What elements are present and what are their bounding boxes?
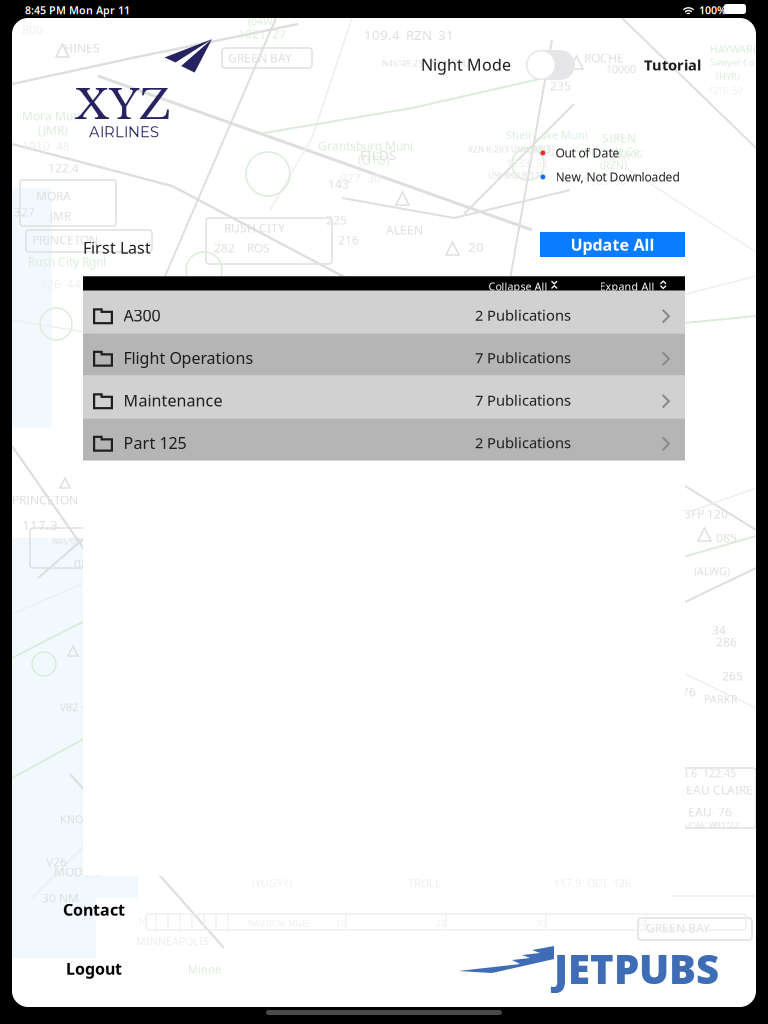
staticText: 117.9 ODI 126 — [554, 876, 631, 890]
staticText: 800 — [22, 22, 43, 38]
staticText: GREEN BAY — [646, 920, 710, 936]
staticText: 20 — [468, 238, 484, 256]
staticText: 34 — [712, 622, 726, 638]
staticText: HAYWARD — [710, 42, 761, 56]
staticText: Grantsburg Muni — [318, 138, 413, 154]
staticText: XYZ — [75, 79, 171, 130]
staticText: (GTG) — [358, 152, 390, 168]
button[interactable]: Contact — [63, 899, 125, 920]
staticText: Logout — [66, 958, 122, 979]
staticText: Minne — [188, 962, 221, 976]
staticText: N53°46' W91°22' — [676, 820, 741, 831]
staticText: 30 — [536, 918, 546, 929]
staticText: (SSQ) — [528, 142, 554, 156]
button[interactable]: Night Mode toggle — [526, 50, 575, 80]
staticText: MORA — [36, 188, 71, 204]
staticText: 10000 — [606, 62, 636, 76]
staticText: 085 — [74, 556, 95, 572]
staticText: JMR — [50, 208, 71, 224]
staticText: 7 Publications — [475, 348, 571, 367]
staticText: 927 30 — [340, 170, 381, 186]
staticText: A300 — [123, 305, 160, 326]
button[interactable]: Logout — [66, 958, 122, 979]
staticText: 235 — [550, 78, 571, 94]
staticText: 30 NM — [42, 890, 79, 906]
staticText: 76 — [682, 684, 696, 700]
staticText: MINNEAPOLIS — [136, 934, 209, 948]
staticText: Out of Date — [555, 145, 619, 161]
staticText: 2 Publications — [475, 433, 571, 452]
staticText: 7 Publications — [475, 390, 571, 410]
staticText: Maintenance — [123, 390, 222, 411]
staticText: Tutorial — [644, 55, 701, 74]
staticText: Rush City Rgnl — [28, 254, 106, 270]
staticText: 282 ROS — [214, 240, 270, 256]
button[interactable]: Tutorial — [644, 55, 701, 74]
staticText: KNO — [60, 812, 83, 826]
staticText: 20 — [436, 918, 446, 929]
staticText: GREEN BAY — [228, 50, 292, 66]
staticText: PRINCETON — [32, 232, 98, 248]
staticText: 10 — [336, 918, 346, 929]
staticText: (HYR) — [716, 70, 740, 82]
staticText: 40 — [636, 918, 646, 929]
staticText: Shell Lake Muni — [506, 128, 588, 142]
button[interactable]: Part 125 — [83, 418, 685, 461]
staticText: N45°49.23' W92°22.47' — [382, 58, 473, 69]
staticText: EAU CLAIRE — [686, 782, 753, 798]
staticText: 327 — [14, 204, 35, 220]
staticText: PARKR — [704, 692, 738, 706]
staticText: HINES — [64, 40, 100, 56]
staticText: 117.3 — [22, 516, 58, 534]
staticText: 1021 27 — [238, 26, 286, 42]
staticText: 123.6 122.45 — [670, 766, 736, 780]
staticText: 989 50 — [590, 174, 626, 188]
button[interactable]: Collapse All — [488, 279, 547, 293]
staticText: 1010 48 — [22, 138, 70, 154]
staticText: Burnett Co — [584, 144, 639, 158]
staticText: ALEEN — [386, 222, 423, 238]
staticText: 085 — [716, 530, 737, 546]
staticText: 8:45 PM — [25, 3, 66, 17]
staticText: 10 — [138, 916, 148, 927]
staticText: RZN R-293 UNUSABLE — [468, 144, 551, 155]
staticText: 10000 — [604, 152, 629, 164]
staticText: SIREN — [602, 130, 636, 146]
staticText: Contact — [63, 899, 125, 920]
staticText: Update All — [570, 234, 654, 255]
staticText: 265 — [722, 668, 743, 684]
staticText: TROLL — [408, 876, 441, 890]
staticText: 286 — [716, 634, 737, 650]
staticText: (04W) — [248, 14, 276, 28]
staticText: 1216 50 — [708, 84, 742, 96]
staticText: (JMR) — [38, 122, 68, 138]
staticText: V26 — [46, 854, 67, 870]
button[interactable]: A300 — [83, 291, 685, 333]
staticText: 122.4 — [48, 160, 79, 176]
staticText: 100% — [699, 3, 726, 17]
staticText: USE BRD R-111 — [488, 170, 545, 181]
staticText: 109.4 RZN 31 — [364, 26, 454, 44]
staticText: Mora Muni — [22, 108, 83, 124]
staticText: New, Not Downloaded — [555, 169, 679, 185]
staticText: Collapse All — [488, 279, 547, 293]
staticText: (RZN) — [600, 158, 627, 172]
staticText: GFP 120 — [682, 506, 728, 522]
staticText: Mon Apr 11 — [69, 3, 130, 17]
button[interactable]: Expand All — [599, 279, 654, 293]
staticText: FILDS — [360, 146, 396, 164]
staticText: N45°09' — [52, 536, 83, 547]
button[interactable]: Maintenance — [83, 376, 685, 418]
staticText: EAU 76 — [688, 804, 732, 820]
button[interactable]: Flight Operations — [83, 333, 685, 376]
staticText: JETPUBS — [554, 942, 719, 995]
staticText: Night Mode — [421, 54, 511, 75]
button[interactable]: Update All — [540, 232, 685, 257]
staticText: First Last — [83, 237, 151, 258]
staticText: 225 — [326, 212, 347, 228]
staticText: Sawyer Co — [710, 56, 755, 68]
